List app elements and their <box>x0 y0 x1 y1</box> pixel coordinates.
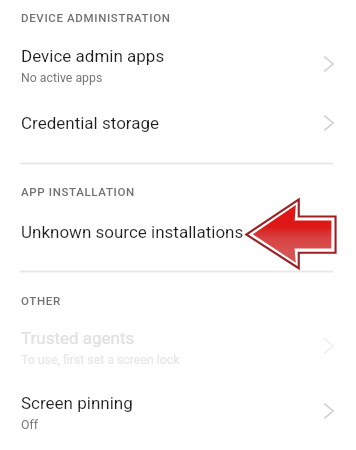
staticText: APP INSTALLATION <box>21 185 135 198</box>
staticText: Screen pinning <box>21 393 133 413</box>
staticText: Off <box>21 418 39 432</box>
button[interactable]: Trusted agents <box>0 316 356 372</box>
staticText: No active apps <box>21 71 103 85</box>
staticText: Trusted agents <box>21 328 135 348</box>
staticText: DEVICE ADMINISTRATION <box>21 11 171 24</box>
staticText: Unknown source installations <box>21 222 244 242</box>
staticText: Credential storage <box>21 113 160 133</box>
button[interactable]: Screen pinning <box>0 381 356 437</box>
other: Highlighted item pointer <box>240 190 342 280</box>
button[interactable]: Credential storage <box>0 100 356 146</box>
button[interactable]: Unknown source installations <box>0 209 356 255</box>
staticText: OTHER <box>21 294 61 307</box>
staticText: Device admin apps <box>21 46 165 66</box>
button[interactable]: Device admin apps <box>0 34 356 90</box>
staticText: To use, first set a screen lock <box>21 353 180 367</box>
